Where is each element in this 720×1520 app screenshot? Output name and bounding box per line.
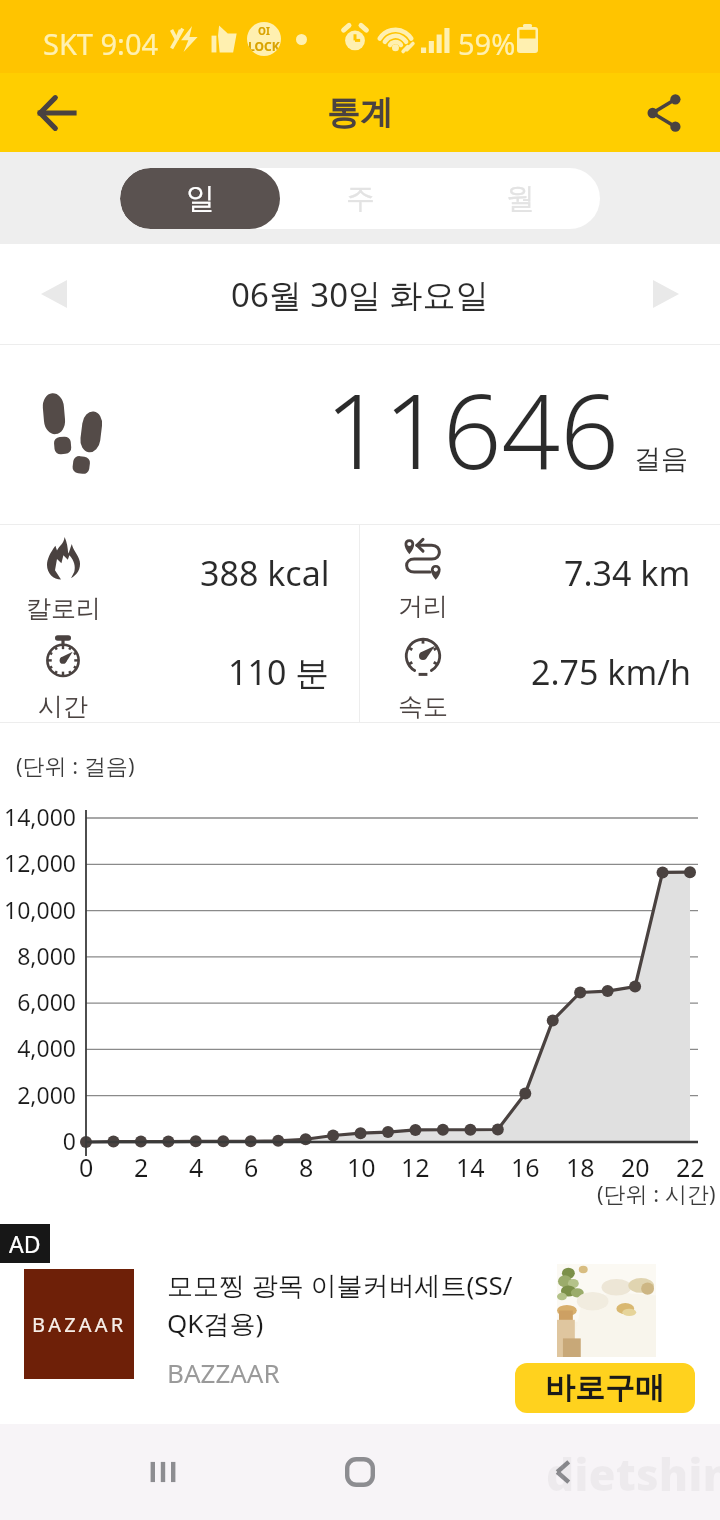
button[interactable]: Share [624,73,720,152]
button[interactable]: Recents [123,1424,203,1520]
button[interactable]: 시간 [0,623,359,722]
staticText: 12 [401,1150,430,1184]
button[interactable]: Next day [626,244,706,344]
staticText: (단위 : 걸음) [16,750,135,780]
staticText: 통계 [327,92,393,134]
staticText: 4,000 [17,1032,76,1063]
staticText: 0 [79,1150,94,1184]
staticText: BAZAAR [32,1311,127,1338]
staticText: 10 [347,1150,376,1184]
button[interactable]: 칼로리 [0,525,359,623]
staticText: 7.34 km [564,550,691,596]
staticText: 걸음 [634,442,688,476]
staticText: OI [258,24,270,38]
button[interactable]: Back [523,1424,603,1520]
staticText: 모모찡 광목 이불커버세트(SS/ [167,1267,513,1303]
staticText: 06월 30일 화요일 [231,272,489,317]
staticText: 칼로리 [26,593,101,624]
staticText: 2,000 [17,1079,76,1110]
staticText: 거리 [398,591,448,622]
button[interactable]: Previous day [14,244,94,344]
staticText: 18 [566,1150,595,1184]
staticText: 4 [189,1150,204,1184]
staticText: 16 [511,1150,540,1184]
staticText: 2 [134,1150,149,1184]
button[interactable]: 거리 [360,525,720,623]
staticText: SKT 9:04 [43,24,159,63]
button[interactable]: 월 [440,168,600,229]
staticText: 388 kcal [200,550,330,596]
staticText: 시간 [38,691,88,722]
staticText: 8,000 [17,940,76,971]
staticText: 59% [458,24,516,63]
staticText: 일 [186,180,215,217]
staticText: 14 [456,1150,485,1184]
button[interactable]: 바로구매 [515,1363,695,1413]
staticText: 0 [62,1125,76,1156]
button[interactable]: 일 [120,168,280,229]
staticText: 바로구매 [545,1369,665,1407]
staticText: dietshin [546,1444,720,1504]
staticText: BAZZAAR [167,1355,280,1390]
staticText: 110 분 [228,649,330,695]
staticText: 12,000 [4,847,76,878]
staticText: LOCK [248,38,280,54]
staticText: 10,000 [4,894,76,925]
staticText: QK겸용) [167,1305,264,1341]
staticText: 월 [506,180,535,217]
staticText: 11646 [325,359,620,499]
staticText: AD [9,1228,41,1259]
staticText: (단위 : 시간) [597,1178,716,1208]
button[interactable]: Home [320,1424,400,1520]
staticText: 6 [244,1150,259,1184]
staticText: 2.75 km/h [531,649,691,695]
staticText: 8 [299,1150,314,1184]
staticText: 6,000 [17,986,76,1017]
staticText: 속도 [398,691,448,722]
staticText: 22 [676,1150,705,1184]
button[interactable]: Back [0,73,96,152]
staticText: 20 [621,1150,650,1184]
button[interactable]: 속도 [360,623,720,722]
staticText: 14,000 [4,801,76,832]
button[interactable]: 주 [280,168,440,229]
staticText: 주 [346,180,375,217]
